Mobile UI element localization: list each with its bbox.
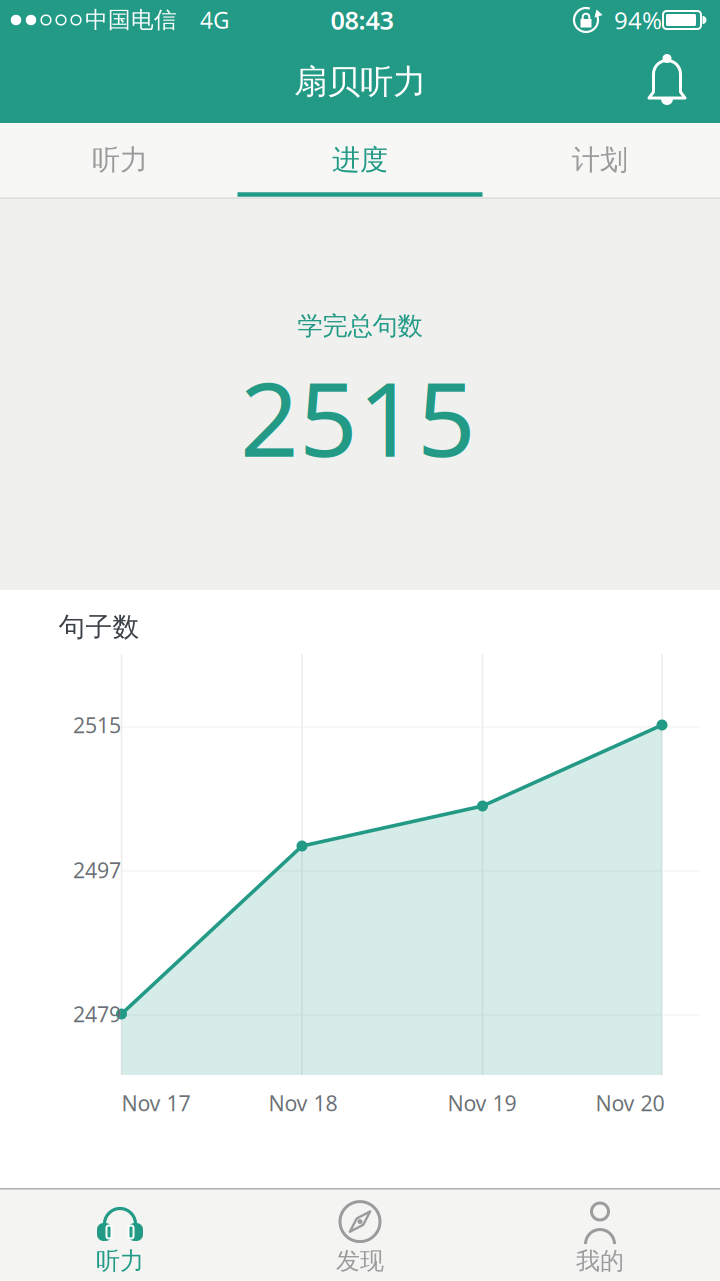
- staticText: Nov 19: [447, 1089, 516, 1117]
- staticText: 94%: [614, 4, 662, 36]
- staticText: 听力: [96, 1246, 144, 1276]
- staticText: Nov 18: [268, 1089, 337, 1117]
- staticText: 2515: [240, 349, 476, 485]
- button[interactable]: 听力: [0, 1188, 240, 1281]
- staticText: 2497: [73, 856, 121, 884]
- button[interactable]: [637, 49, 697, 109]
- button[interactable]: 发现: [240, 1188, 480, 1281]
- staticText: 中国电信: [85, 6, 177, 34]
- button[interactable]: 我的: [480, 1188, 720, 1281]
- staticText: 听力: [92, 143, 148, 177]
- button[interactable]: 计划: [480, 124, 720, 196]
- staticText: 2515: [73, 711, 121, 739]
- staticText: 扇贝听力: [294, 61, 426, 102]
- staticText: 08:43: [330, 3, 393, 37]
- button[interactable]: 听力: [0, 124, 240, 196]
- staticText: 计划: [572, 143, 628, 177]
- staticText: 学完总句数: [297, 310, 422, 341]
- staticText: Nov 20: [595, 1089, 664, 1117]
- staticText: Nov 17: [121, 1089, 190, 1117]
- staticText: 4G: [200, 5, 230, 35]
- staticText: 2479: [73, 1000, 121, 1028]
- staticText: 发现: [336, 1246, 384, 1276]
- staticText: 进度: [332, 143, 388, 177]
- staticText: 句子数: [58, 611, 139, 643]
- staticText: 我的: [576, 1246, 624, 1276]
- button[interactable]: 进度: [240, 124, 480, 196]
